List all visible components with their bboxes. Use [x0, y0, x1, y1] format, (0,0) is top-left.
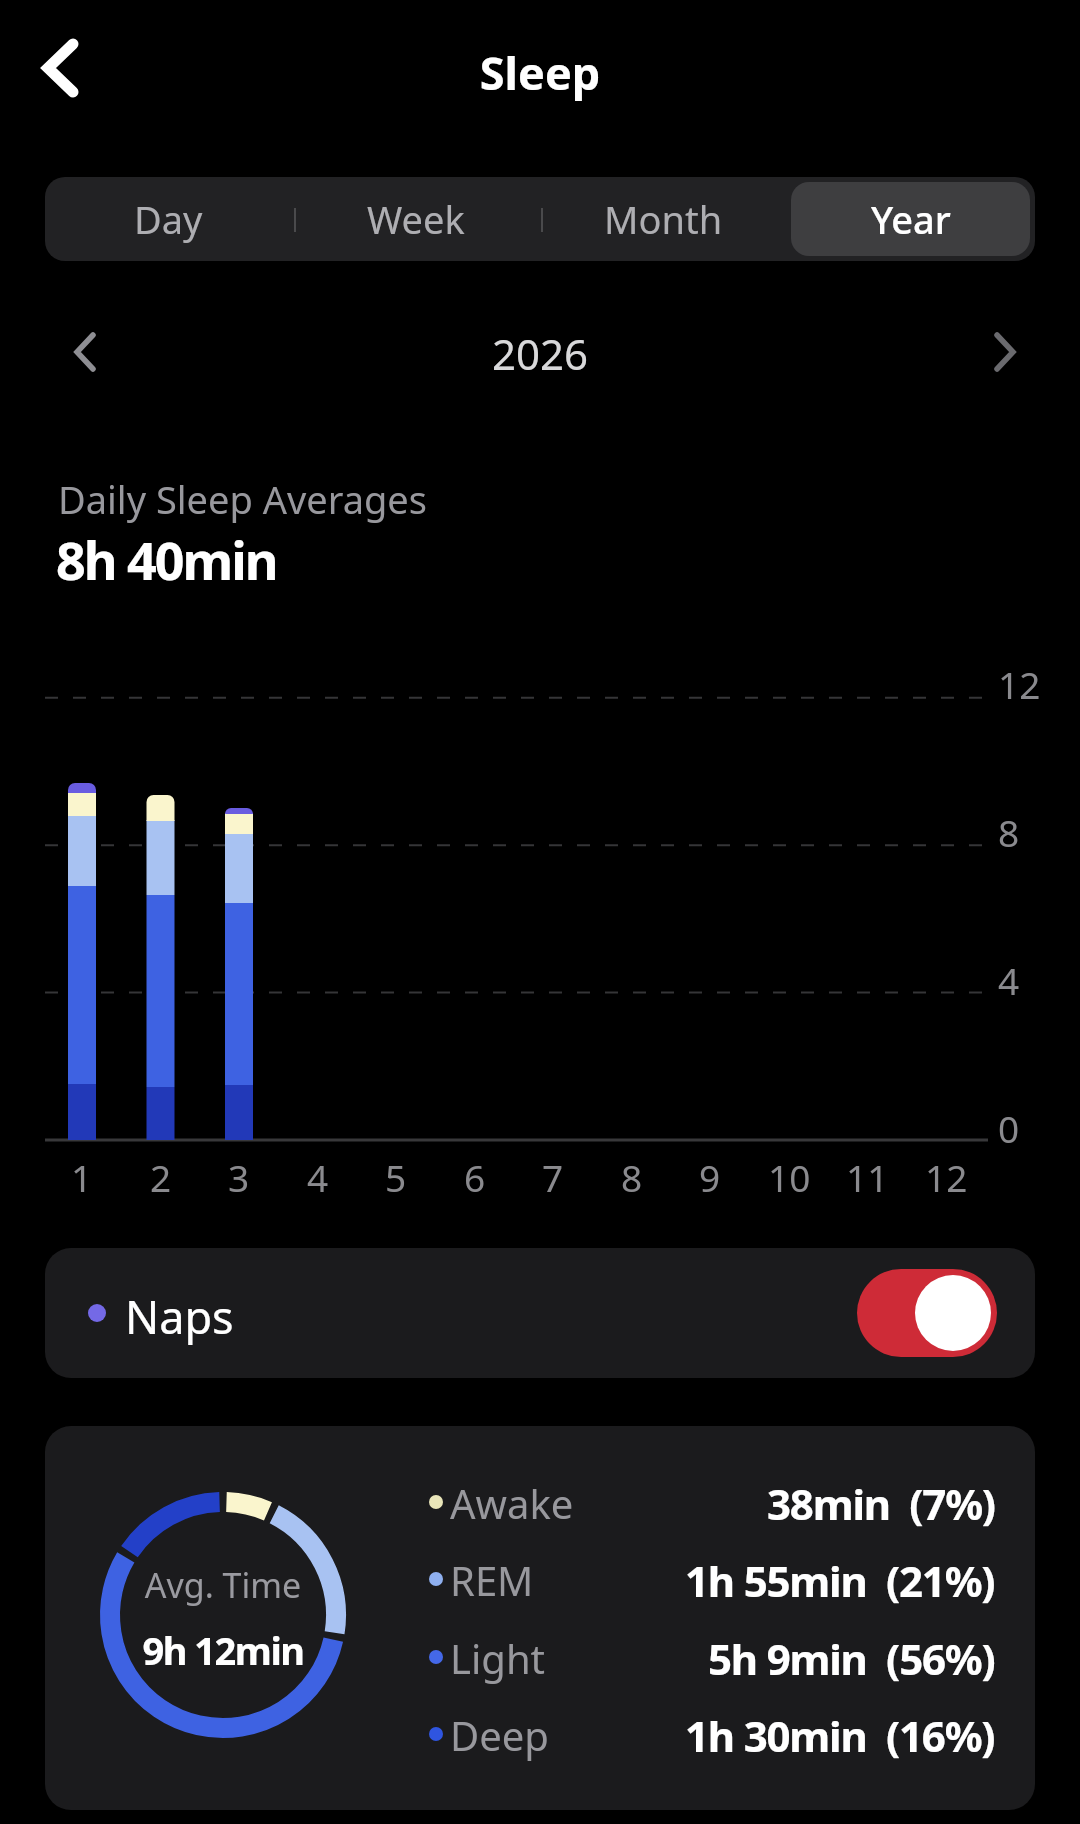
button[interactable]: Naps: [45, 1248, 1035, 1378]
staticText: Daily Sleep Averages: [58, 473, 427, 525]
staticText: 12: [925, 1152, 968, 1194]
staticText: 3: [228, 1152, 250, 1194]
staticText: 7: [542, 1152, 564, 1194]
staticText: 8: [621, 1152, 643, 1194]
staticText: Week: [367, 193, 465, 245]
staticText: 2026: [0, 325, 1080, 382]
staticText: 9: [699, 1152, 721, 1194]
button[interactable]: Month: [539, 177, 787, 261]
staticText: 6: [464, 1152, 486, 1194]
staticText: Month: [604, 193, 723, 245]
button[interactable]: Day: [45, 177, 292, 261]
staticText: 2: [150, 1152, 172, 1194]
staticText: 12: [998, 659, 1041, 701]
staticText: 5: [385, 1152, 407, 1194]
staticText: 8h 40min: [56, 524, 277, 595]
staticText: 10: [768, 1152, 811, 1194]
staticText: Sleep: [0, 42, 1080, 103]
staticText: 5h 9min (56%): [708, 1630, 995, 1682]
staticText: 4: [307, 1152, 329, 1194]
staticText: Day: [134, 193, 203, 245]
button[interactable]: Week: [292, 177, 539, 261]
staticText: 1h 55min (21%): [685, 1552, 995, 1604]
staticText: Year: [871, 193, 951, 245]
staticText: 4: [998, 955, 1020, 997]
staticText: REM: [450, 1553, 534, 1607]
button[interactable]: [55, 320, 115, 384]
staticText: Naps: [125, 1286, 234, 1347]
staticText: 38min (7%): [767, 1475, 995, 1527]
button[interactable]: [857, 1269, 997, 1357]
staticText: 8: [998, 807, 1020, 849]
staticText: Light: [450, 1631, 546, 1685]
button[interactable]: Year: [787, 177, 1035, 261]
staticText: 9h 12min: [108, 1624, 338, 1676]
button[interactable]: [30, 30, 90, 106]
button[interactable]: [975, 320, 1035, 384]
staticText: 11: [846, 1152, 889, 1194]
staticText: 0: [998, 1103, 1020, 1145]
staticText: 1h 30min (16%): [685, 1707, 995, 1759]
staticText: Avg. Time: [108, 1562, 338, 1608]
staticText: Awake: [450, 1476, 574, 1530]
staticText: Deep: [450, 1708, 549, 1762]
staticText: 1: [71, 1152, 93, 1194]
